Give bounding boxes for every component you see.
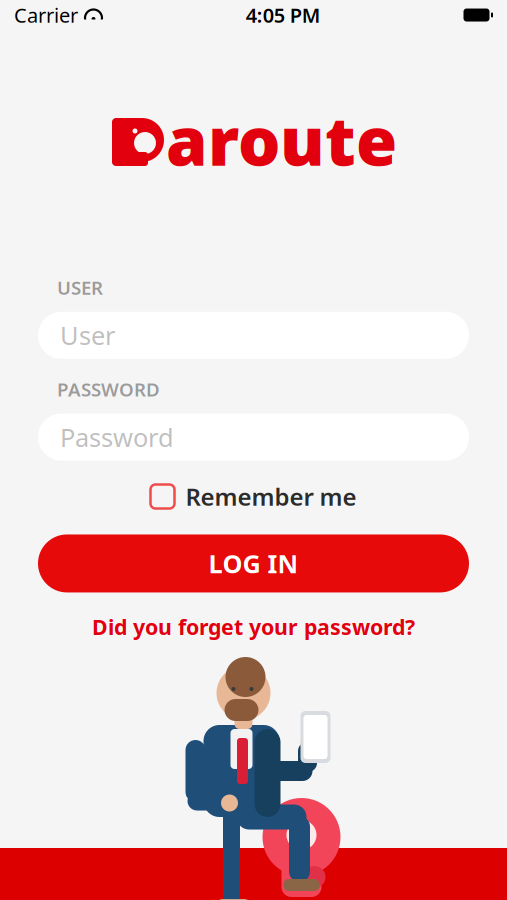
staticText: Did you forget your password? bbox=[92, 612, 415, 641]
staticText: LOG IN bbox=[208, 547, 298, 580]
button[interactable]: Password bbox=[38, 414, 469, 461]
staticText: User bbox=[60, 318, 115, 352]
staticText: aroute bbox=[166, 96, 397, 184]
staticText: Remember me bbox=[185, 481, 356, 512]
staticText: Carrier bbox=[14, 2, 78, 28]
button[interactable]: LOG IN bbox=[38, 534, 469, 592]
staticText: 4:05 PM bbox=[246, 2, 321, 28]
staticText: USER bbox=[57, 275, 103, 300]
staticText: Password bbox=[60, 420, 174, 454]
staticText: PASSWORD bbox=[57, 377, 160, 402]
button[interactable]: Did you forget your password? bbox=[82, 606, 425, 647]
button[interactable]: User bbox=[38, 312, 469, 359]
button[interactable]: Remember me bbox=[150, 477, 356, 516]
